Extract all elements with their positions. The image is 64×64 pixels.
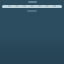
- button[interactable]: Title: [28, 1, 37, 3]
- button[interactable]: Secondary action: [27, 10, 37, 12]
- button[interactable]: Primary action: [2, 5, 62, 8]
